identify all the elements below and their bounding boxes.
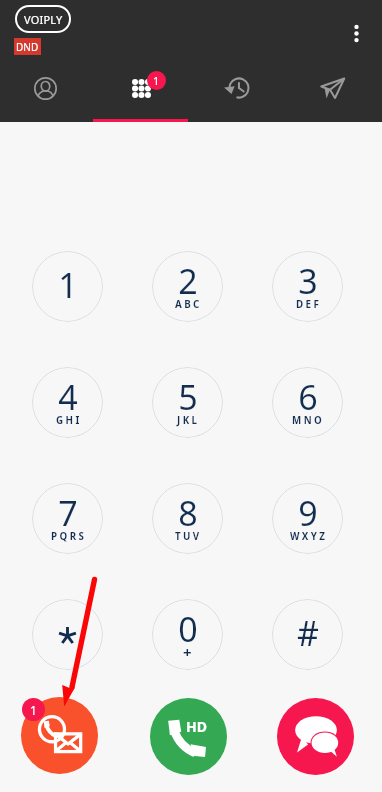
staticText: WXYZ (290, 530, 328, 543)
staticText: 1 (30, 702, 37, 718)
staticText: 7 (58, 490, 78, 536)
button[interactable]: Contacts (19, 62, 71, 114)
button[interactable]: 4 (32, 367, 103, 438)
button[interactable]: 9 (272, 483, 343, 554)
button[interactable]: 2 (152, 251, 223, 322)
button[interactable]: Messages (277, 698, 354, 775)
staticText: 9 (298, 490, 318, 536)
staticText: HD (186, 717, 207, 736)
staticText: 8 (178, 490, 198, 536)
staticText: 1 (58, 262, 78, 308)
button[interactable]: More options (343, 20, 370, 47)
staticText: TUV (175, 530, 202, 543)
button[interactable]: VOIPLY (15, 5, 71, 33)
staticText: 1 (153, 73, 160, 88)
staticText: 0 (178, 606, 198, 652)
button[interactable]: Voicemail (21, 697, 98, 774)
staticText: 3 (298, 258, 318, 304)
button[interactable]: Send message (306, 62, 358, 114)
staticText: MNO (292, 414, 325, 427)
button[interactable]: 6 (272, 367, 343, 438)
staticText: 4 (58, 374, 78, 420)
button[interactable]: 7 (32, 483, 103, 554)
button[interactable]: 8 (152, 483, 223, 554)
button[interactable]: Dialpad (115, 62, 167, 114)
button[interactable]: # (272, 599, 343, 670)
staticText: VOIPLY (24, 12, 63, 27)
button[interactable]: Call in HD (150, 698, 227, 775)
staticText: # (297, 610, 319, 656)
staticText: DEF (296, 298, 322, 311)
staticText: PQRS (51, 530, 87, 543)
button[interactable]: 5 (152, 367, 223, 438)
staticText: DND (16, 40, 39, 54)
staticText: JKL (177, 414, 200, 427)
button[interactable] (32, 599, 103, 670)
staticText: 6 (298, 374, 318, 420)
staticText: 2 (178, 258, 198, 304)
button[interactable]: 1 (32, 251, 103, 322)
staticText: 5 (178, 374, 198, 420)
staticText: ABC (175, 298, 202, 311)
staticText: GHI (56, 414, 82, 427)
button[interactable]: 0 (152, 599, 223, 670)
button[interactable]: Recent calls (212, 62, 264, 114)
button[interactable]: 3 (272, 251, 343, 322)
staticText: + (183, 642, 192, 662)
button[interactable]: DND (14, 38, 41, 55)
